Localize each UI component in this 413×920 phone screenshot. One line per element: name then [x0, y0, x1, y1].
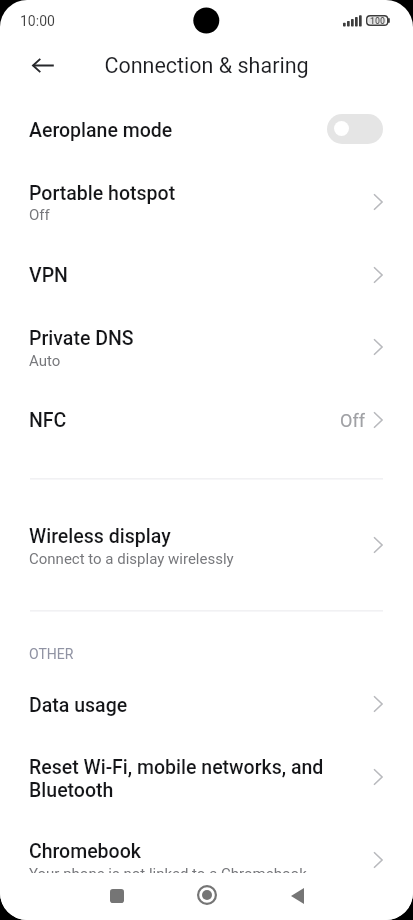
staticText: 10:00: [20, 13, 55, 29]
button[interactable]: VPN: [0, 244, 413, 307]
staticText: Data usage: [29, 694, 329, 717]
button[interactable]: Data usage: [0, 673, 413, 736]
button[interactable]: Back: [273, 872, 321, 919]
staticText: Wireless display: [29, 525, 329, 548]
staticText: Your phone is not linked to a Chromebook: [29, 865, 307, 873]
button[interactable]: Aeroplane mode switch: [327, 114, 383, 144]
staticText: Off: [340, 410, 365, 431]
button[interactable]: Home: [183, 871, 231, 918]
button[interactable]: Reset Wi-Fi, mobile networks, and Blueto…: [0, 736, 413, 820]
button[interactable]: Recents: [93, 872, 141, 919]
staticText: NFC: [29, 409, 329, 432]
staticText: Chromebook: [29, 840, 329, 863]
staticText: Connection & sharing: [0, 53, 413, 78]
staticText: Auto: [29, 352, 61, 370]
staticText: VPN: [29, 264, 329, 287]
staticText: Aeroplane mode: [29, 119, 173, 142]
staticText: OTHER: [29, 646, 74, 662]
button[interactable]: Chromebook: [0, 820, 413, 873]
staticText: Reset Wi-Fi, mobile networks, and Blueto…: [29, 756, 329, 802]
staticText: 100: [370, 16, 385, 26]
staticText: Connect to a display wirelessly: [29, 550, 234, 568]
button[interactable]: Portable hotspot: [0, 162, 413, 244]
staticText: Portable hotspot: [29, 182, 329, 205]
staticText: Off: [29, 206, 50, 224]
button[interactable]: NFC: [0, 389, 413, 452]
button[interactable]: Private DNS: [0, 307, 413, 389]
button[interactable]: Aeroplane mode: [0, 99, 413, 162]
button[interactable]: Wireless display: [0, 505, 413, 587]
button[interactable]: Back: [19, 41, 67, 89]
staticText: Private DNS: [29, 327, 329, 350]
